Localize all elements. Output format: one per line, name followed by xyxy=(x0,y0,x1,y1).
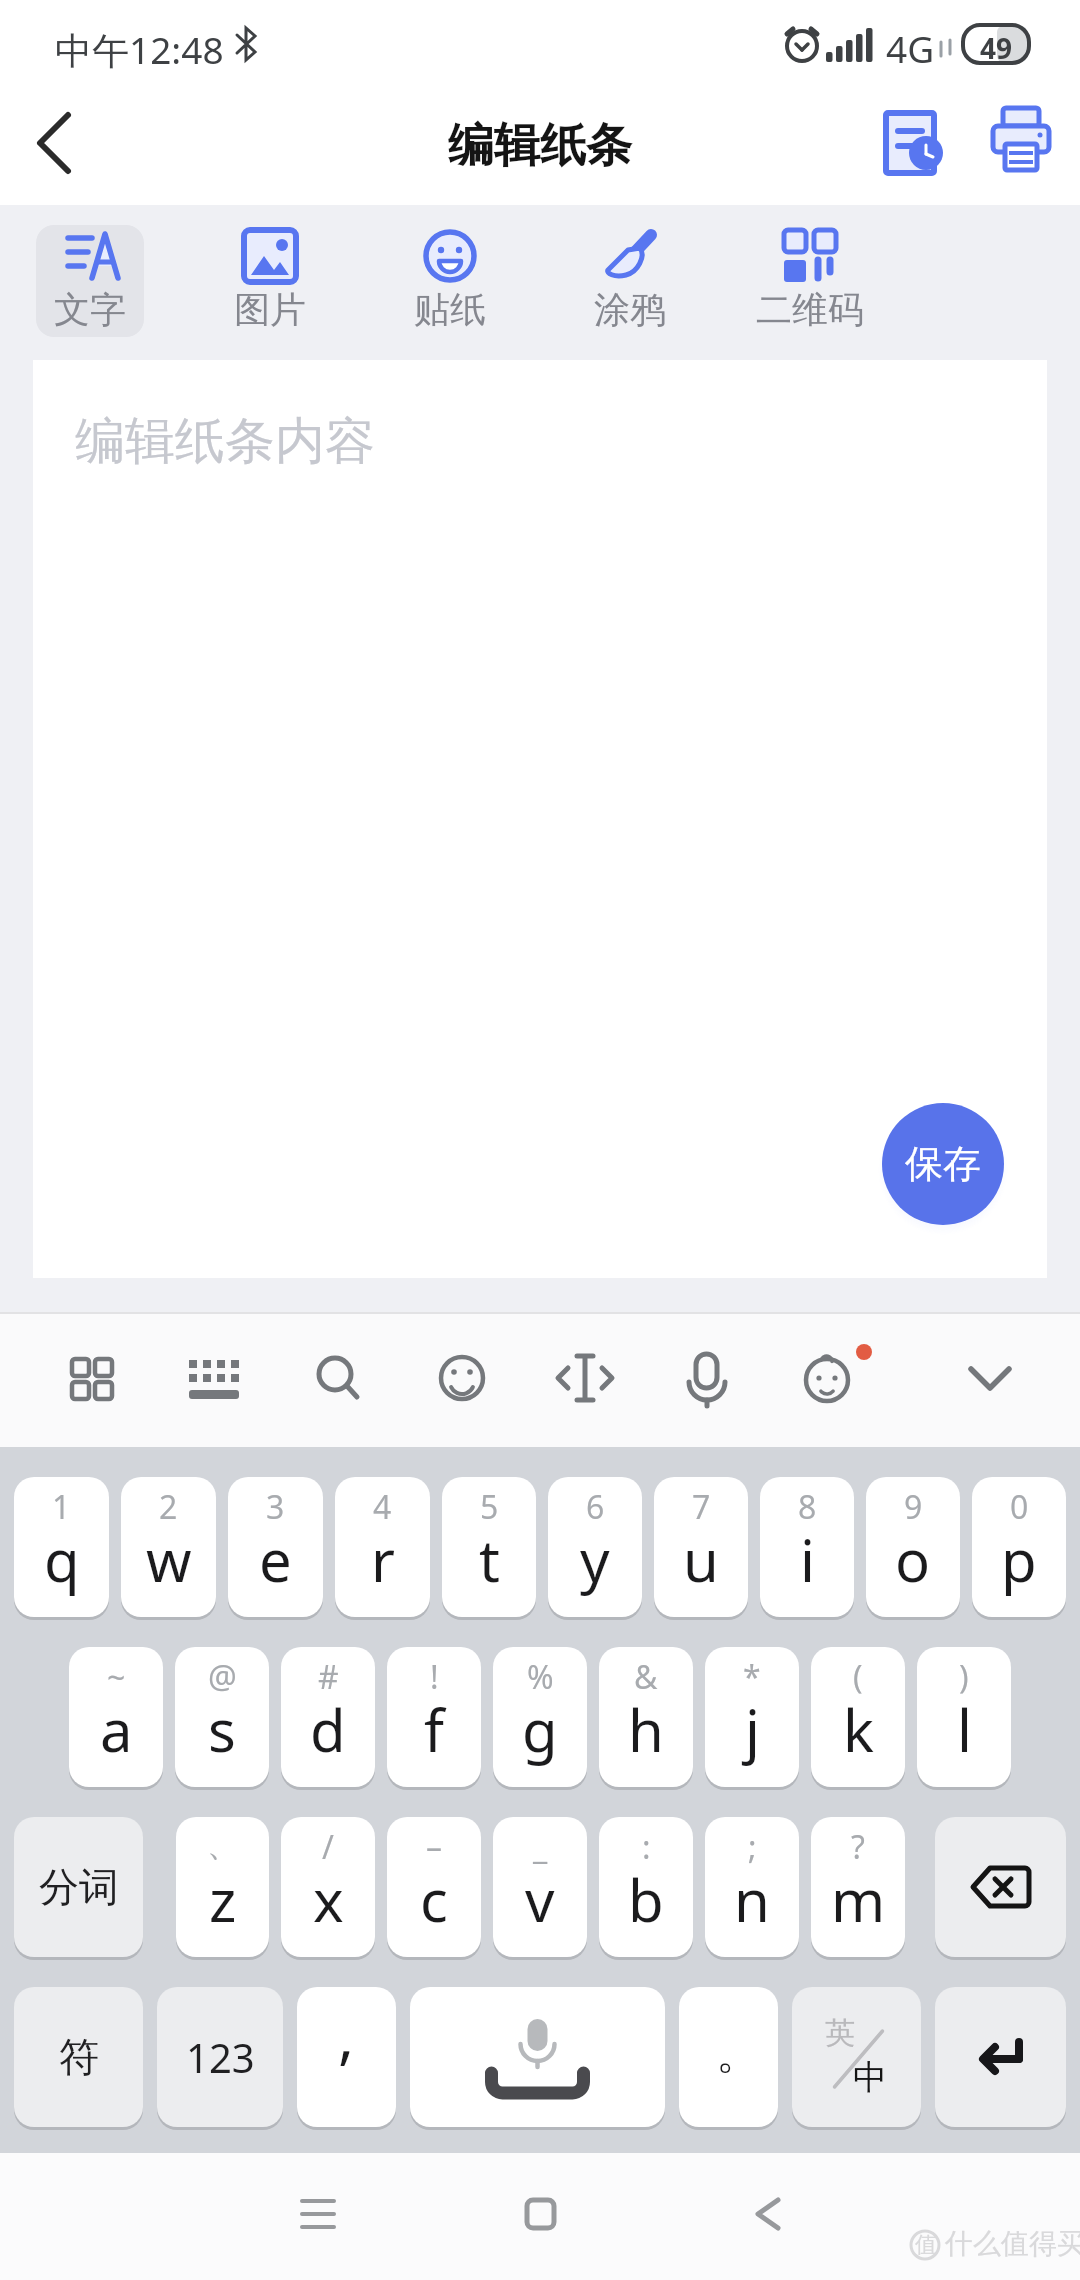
staticText: 分词 xyxy=(39,1862,119,1912)
button[interactable] xyxy=(865,95,955,195)
staticText: 涂鸦 xyxy=(594,287,666,332)
button[interactable]: 5 xyxy=(442,1477,536,1617)
staticText: 7 xyxy=(692,1485,711,1529)
staticText: ; xyxy=(748,1825,757,1869)
button[interactable] xyxy=(484,2174,596,2254)
staticText: & xyxy=(634,1655,658,1699)
button[interactable]: 7 xyxy=(654,1477,748,1617)
button[interactable]: _ xyxy=(493,1817,587,1957)
button[interactable]: ? xyxy=(811,1817,905,1957)
button[interactable] xyxy=(545,1339,625,1419)
button[interactable] xyxy=(712,2174,824,2254)
staticText: w xyxy=(146,1520,192,1599)
button[interactable]: 文字 xyxy=(36,225,144,337)
button[interactable]: : xyxy=(599,1817,693,1957)
button[interactable] xyxy=(295,1339,375,1419)
staticText: 、 xyxy=(207,1825,239,1865)
button[interactable]: # xyxy=(281,1647,375,1787)
button[interactable]: 123 xyxy=(157,1987,283,2127)
staticText: z xyxy=(209,1860,237,1939)
button[interactable]: % xyxy=(493,1647,587,1787)
button[interactable]: * xyxy=(705,1647,799,1787)
staticText: 3 xyxy=(266,1485,285,1529)
staticText: 1 xyxy=(52,1485,71,1529)
staticText: f xyxy=(424,1690,444,1769)
staticText: 6 xyxy=(586,1485,605,1529)
button[interactable]: 1 xyxy=(14,1477,109,1617)
button[interactable] xyxy=(262,2174,374,2254)
button[interactable] xyxy=(975,95,1065,195)
staticText: _ xyxy=(533,1825,548,1869)
button[interactable] xyxy=(950,1339,1030,1419)
staticText: q xyxy=(44,1520,80,1599)
staticText: e xyxy=(259,1520,292,1599)
button[interactable] xyxy=(935,1987,1066,2127)
button[interactable] xyxy=(787,1339,867,1419)
staticText: p xyxy=(1001,1520,1037,1599)
button[interactable]: – xyxy=(387,1817,481,1957)
staticText: c xyxy=(420,1860,448,1939)
button[interactable]: 3 xyxy=(228,1477,323,1617)
button[interactable]: 0 xyxy=(972,1477,1066,1617)
staticText: v xyxy=(525,1860,555,1939)
staticText: – xyxy=(426,1825,443,1869)
staticText: j xyxy=(745,1690,760,1769)
button[interactable]: ) xyxy=(917,1647,1011,1787)
button[interactable]: 6 xyxy=(548,1477,642,1617)
staticText: s xyxy=(208,1690,236,1769)
staticText: 值 xyxy=(915,2231,937,2259)
button[interactable] xyxy=(667,1339,747,1419)
button[interactable]: 8 xyxy=(760,1477,854,1617)
button[interactable]: & xyxy=(599,1647,693,1787)
button[interactable]: / xyxy=(281,1817,375,1957)
staticText: a xyxy=(100,1690,133,1769)
button[interactable] xyxy=(0,90,90,190)
button[interactable]: 9 xyxy=(866,1477,960,1617)
staticText: n xyxy=(734,1860,770,1939)
staticText: @ xyxy=(208,1655,237,1699)
staticText: % xyxy=(527,1655,554,1699)
button[interactable]: 贴纸 xyxy=(396,225,504,337)
button[interactable]: 、 xyxy=(176,1817,269,1957)
button[interactable] xyxy=(935,1817,1066,1957)
button[interactable]: ~ xyxy=(69,1647,163,1787)
staticText: 0 xyxy=(1010,1485,1029,1529)
button[interactable]: @ xyxy=(175,1647,269,1787)
staticText: 什么值得买 xyxy=(945,2226,1080,2261)
button[interactable] xyxy=(174,1339,254,1419)
staticText: 4 xyxy=(373,1485,392,1529)
staticText: ! xyxy=(430,1655,439,1699)
staticText: 123 xyxy=(186,2030,255,2084)
staticText: 保存 xyxy=(905,1140,981,1188)
button[interactable]: 英 xyxy=(792,1987,921,2127)
button[interactable]: 分词 xyxy=(14,1817,143,1957)
staticText: 编辑纸条内容 xyxy=(75,410,375,473)
button[interactable] xyxy=(422,1339,502,1419)
button[interactable] xyxy=(51,1339,131,1419)
button[interactable]: 二维码 xyxy=(756,225,864,337)
button[interactable]: 符 xyxy=(14,1987,143,2127)
button[interactable]: 2 xyxy=(121,1477,216,1617)
button[interactable]: 4 xyxy=(335,1477,430,1617)
staticText: r xyxy=(371,1520,395,1599)
staticText: 5 xyxy=(480,1485,499,1529)
staticText: ) xyxy=(959,1655,969,1699)
button[interactable]: ! xyxy=(387,1647,481,1787)
staticText: ~ xyxy=(107,1655,126,1699)
button[interactable]: ; xyxy=(705,1817,799,1957)
staticText: d xyxy=(310,1690,346,1769)
staticText: b xyxy=(628,1860,664,1939)
button[interactable]: 图片 xyxy=(216,225,324,337)
staticText: 9 xyxy=(904,1485,923,1529)
staticText: # xyxy=(318,1655,339,1699)
staticText: 符 xyxy=(59,2032,99,2082)
staticText: 中 xyxy=(853,2056,887,2099)
button[interactable]: , xyxy=(297,1987,396,2127)
button[interactable]: 涂鸦 xyxy=(576,225,684,337)
button[interactable]: 。 xyxy=(679,1987,778,2127)
button[interactable]: ( xyxy=(811,1647,905,1787)
button[interactable] xyxy=(410,1987,665,2127)
button[interactable]: 保存 xyxy=(882,1103,1004,1225)
staticText: 编辑纸条 xyxy=(448,117,632,175)
staticText: i xyxy=(800,1520,815,1599)
